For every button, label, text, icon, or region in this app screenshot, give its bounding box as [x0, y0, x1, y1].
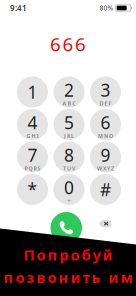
staticText: A B C: [62, 100, 75, 107]
button[interactable]: 0: [53, 174, 84, 205]
staticText: 9:41: [10, 3, 27, 13]
button[interactable]: Delete: [94, 214, 116, 232]
button[interactable]: 7: [17, 141, 48, 172]
button[interactable]: #: [90, 174, 121, 205]
staticText: п о з в о н и т ь и м: [3, 267, 132, 287]
staticText: 666: [50, 32, 86, 56]
staticText: 8: [64, 143, 74, 166]
staticText: П о п р о б у й: [23, 245, 112, 264]
staticText: M N O: [98, 132, 113, 140]
staticText: 0: [64, 176, 74, 199]
staticText: +: [67, 197, 70, 205]
button[interactable]: *: [17, 174, 48, 205]
staticText: #: [100, 178, 111, 201]
staticText: 2: [64, 78, 74, 101]
staticText: 6: [100, 111, 110, 134]
staticText: J K L: [64, 132, 74, 140]
staticText: 7: [27, 143, 37, 166]
button[interactable]: 5: [53, 109, 84, 140]
button[interactable]: 2: [53, 76, 84, 107]
staticText: D E F: [99, 100, 111, 107]
button[interactable]: 6: [90, 109, 121, 140]
staticText: 5: [64, 111, 74, 134]
button[interactable]: 1: [17, 76, 48, 107]
staticText: 9: [100, 143, 110, 166]
button[interactable]: Call: [50, 212, 82, 243]
staticText: *: [27, 178, 37, 201]
button[interactable]: 4: [17, 109, 48, 140]
staticText: G H I: [26, 132, 38, 140]
staticText: P Q R S: [24, 165, 40, 172]
button[interactable]: 8: [53, 141, 84, 172]
staticText: 3: [100, 78, 110, 101]
button[interactable]: 9: [90, 141, 121, 172]
button[interactable]: 3: [90, 76, 121, 107]
staticText: W X Y Z: [97, 165, 114, 172]
staticText: 4: [27, 111, 37, 134]
staticText: 80%: [100, 4, 114, 12]
staticText: 1: [27, 80, 37, 103]
staticText: T U V: [63, 165, 75, 172]
